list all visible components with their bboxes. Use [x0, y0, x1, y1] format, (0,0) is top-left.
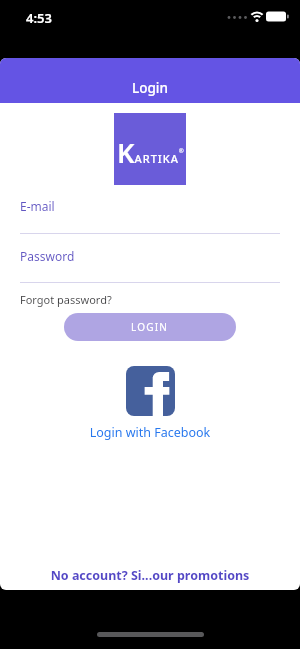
button[interactable]: No account? Si...our promotions [0, 567, 300, 584]
staticText: LOGIN [131, 320, 169, 334]
button[interactable]: LOGIN [64, 313, 236, 341]
staticText: E-mail [20, 198, 55, 214]
button[interactable]: Forgot password? [20, 292, 112, 307]
staticText: Password [20, 248, 75, 264]
staticText: Login [132, 79, 168, 97]
staticText: 4:53 [26, 9, 52, 27]
staticText: KARTIKA® [117, 134, 184, 171]
button[interactable]: Login with Facebook [0, 424, 300, 441]
button[interactable] [126, 366, 175, 416]
